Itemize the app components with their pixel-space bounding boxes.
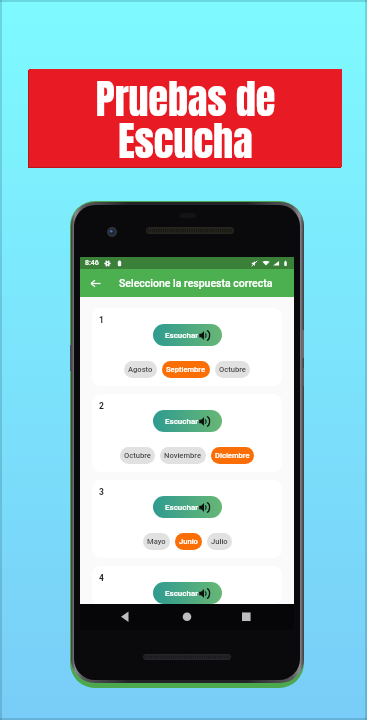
staticText: Escucha <box>29 111 342 171</box>
button[interactable]: Diciembre <box>211 447 254 464</box>
button[interactable]: Junio <box>175 533 202 550</box>
staticText: Septiembre <box>166 365 206 374</box>
staticText: Noviembre <box>164 451 202 460</box>
staticText: Escuchar <box>165 417 199 426</box>
staticText: 1 <box>99 315 104 325</box>
button[interactable]: Escuchar <box>153 496 222 518</box>
staticText: Pruebas de <box>29 69 342 129</box>
staticText: 8:46 <box>85 259 99 267</box>
staticText: Escuchar <box>165 503 199 512</box>
button[interactable]: Noviembre <box>160 447 206 464</box>
staticText: Escuchar <box>165 589 199 598</box>
staticText: Junio <box>179 537 198 546</box>
button[interactable]: Mayo <box>143 533 170 550</box>
button[interactable]: Escuchar <box>153 410 222 432</box>
button[interactable]: Back <box>80 269 110 297</box>
button[interactable]: Octubre <box>215 361 250 378</box>
button[interactable]: Escuchar <box>153 324 222 346</box>
button[interactable]: Octubre <box>120 447 155 464</box>
button[interactable]: Septiembre <box>162 361 210 378</box>
staticText: Agosto <box>128 365 153 374</box>
staticText: Julio <box>211 537 228 546</box>
button[interactable]: Agosto <box>124 361 157 378</box>
staticText: Seleccione la respuesta correcta <box>119 277 273 289</box>
staticText: Mayo <box>147 537 166 546</box>
staticText: 3 <box>99 487 104 497</box>
button[interactable]: Julio <box>207 533 232 550</box>
staticText: Diciembre <box>215 451 250 460</box>
staticText: Escuchar <box>165 331 199 340</box>
staticText: 2 <box>99 401 104 411</box>
staticText: Octubre <box>124 451 151 460</box>
staticText: Octubre <box>219 365 246 374</box>
staticText: 4 <box>99 573 104 583</box>
button[interactable]: Escuchar <box>153 582 222 604</box>
